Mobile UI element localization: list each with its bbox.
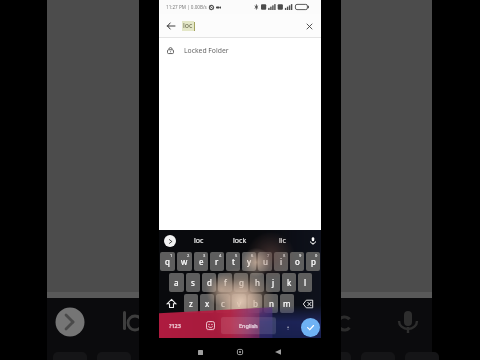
button[interactable]: Shift [159, 293, 183, 314]
button[interactable]: lock [226, 230, 254, 251]
button[interactable]: d [202, 273, 216, 292]
button[interactable]: Back [163, 18, 179, 34]
staticText: d [207, 277, 212, 288]
staticText: 9 [299, 253, 302, 258]
button[interactable]: j [266, 273, 280, 292]
staticText: 1 [170, 253, 173, 258]
staticText: x [205, 298, 210, 309]
button[interactable]: Recent apps [194, 346, 206, 358]
button[interactable]: f [218, 273, 232, 292]
button[interactable]: loc [185, 230, 213, 251]
button[interactable]: u [258, 252, 272, 271]
button[interactable]: lic [268, 230, 296, 251]
staticText: g [239, 277, 244, 288]
button[interactable]: Voice input [306, 234, 319, 247]
staticText: a [174, 277, 179, 288]
button[interactable]: k [282, 273, 296, 292]
staticText: o [295, 256, 300, 267]
staticText: w [181, 256, 188, 267]
button[interactable]: r [210, 252, 224, 271]
staticText: l [304, 277, 307, 288]
staticText: p [311, 256, 316, 267]
button[interactable]: Locked Folder [159, 38, 321, 62]
staticText: ?123 [169, 322, 181, 329]
button[interactable]: Home [234, 346, 246, 358]
staticText: r [215, 256, 219, 267]
button[interactable]: n [264, 294, 278, 313]
staticText: b [253, 298, 258, 309]
button[interactable]: ?123 [162, 314, 188, 336]
button[interactable]: x [200, 294, 214, 313]
button[interactable]: h [250, 273, 264, 292]
staticText: 8 [283, 253, 286, 258]
button[interactable]: c [216, 294, 230, 313]
staticText: English [239, 323, 258, 330]
staticText: 11:27 PM | 0.00B/s [166, 4, 207, 10]
button[interactable]: q [160, 252, 175, 271]
staticText: lock [233, 236, 247, 246]
staticText: c [221, 298, 225, 309]
staticText: 4 [219, 253, 222, 258]
staticText: n [269, 298, 274, 309]
staticText: . [287, 319, 290, 330]
staticText: j [272, 277, 275, 288]
button[interactable]: English [221, 317, 276, 334]
staticText: k [287, 277, 292, 288]
staticText: v [237, 298, 242, 309]
button[interactable]: y [242, 252, 256, 271]
staticText: lic [279, 236, 286, 246]
button[interactable]: Period [279, 317, 298, 336]
button[interactable]: Clear search [301, 18, 317, 34]
staticText: . [287, 321, 290, 332]
staticText: 3 [203, 253, 206, 258]
staticText: f [224, 277, 227, 288]
staticText: m [283, 298, 291, 309]
staticText: z [189, 298, 193, 309]
staticText: y [247, 256, 252, 267]
button[interactable]: Enter [301, 318, 320, 337]
button[interactable]: English [221, 318, 276, 335]
staticText: 7 [267, 253, 270, 258]
staticText: i [280, 256, 283, 267]
button[interactable]: Backspace [295, 293, 321, 314]
button[interactable]: Emoji [200, 315, 220, 335]
staticText: u [263, 256, 268, 267]
button[interactable]: Back [272, 346, 284, 358]
button[interactable]: i [274, 252, 288, 271]
staticText: e [199, 256, 204, 267]
staticText: 0 [315, 253, 318, 258]
staticText: q [165, 256, 170, 267]
button[interactable]: a [169, 273, 184, 292]
button[interactable]: ?123 [162, 315, 188, 337]
staticText: English [239, 322, 258, 329]
button[interactable]: t [226, 252, 240, 271]
button[interactable]: Emoji [200, 316, 220, 336]
button[interactable]: b [248, 294, 262, 313]
staticText: s [191, 277, 195, 288]
button[interactable]: m [280, 294, 294, 313]
staticText: t [232, 256, 235, 267]
staticText: loc [183, 21, 193, 31]
button[interactable]: l [298, 273, 312, 292]
button[interactable]: e [194, 252, 208, 271]
button[interactable]: g [234, 273, 248, 292]
staticText: 2 [187, 253, 190, 258]
staticText: ?123 [169, 323, 181, 330]
staticText: h [255, 277, 260, 288]
staticText: 5 [235, 253, 238, 258]
button[interactable]: w [177, 252, 192, 271]
button[interactable]: v [232, 294, 246, 313]
staticText: loc [194, 236, 204, 246]
staticText: 6 [251, 253, 254, 258]
button[interactable]: o [290, 252, 304, 271]
button[interactable]: Open keyboard toolbar [164, 235, 176, 247]
button[interactable]: z [184, 294, 198, 313]
button[interactable]: s [186, 273, 200, 292]
button[interactable]: p [306, 252, 320, 271]
button[interactable]: Period [279, 315, 298, 334]
staticText: Locked Folder [184, 46, 229, 55]
